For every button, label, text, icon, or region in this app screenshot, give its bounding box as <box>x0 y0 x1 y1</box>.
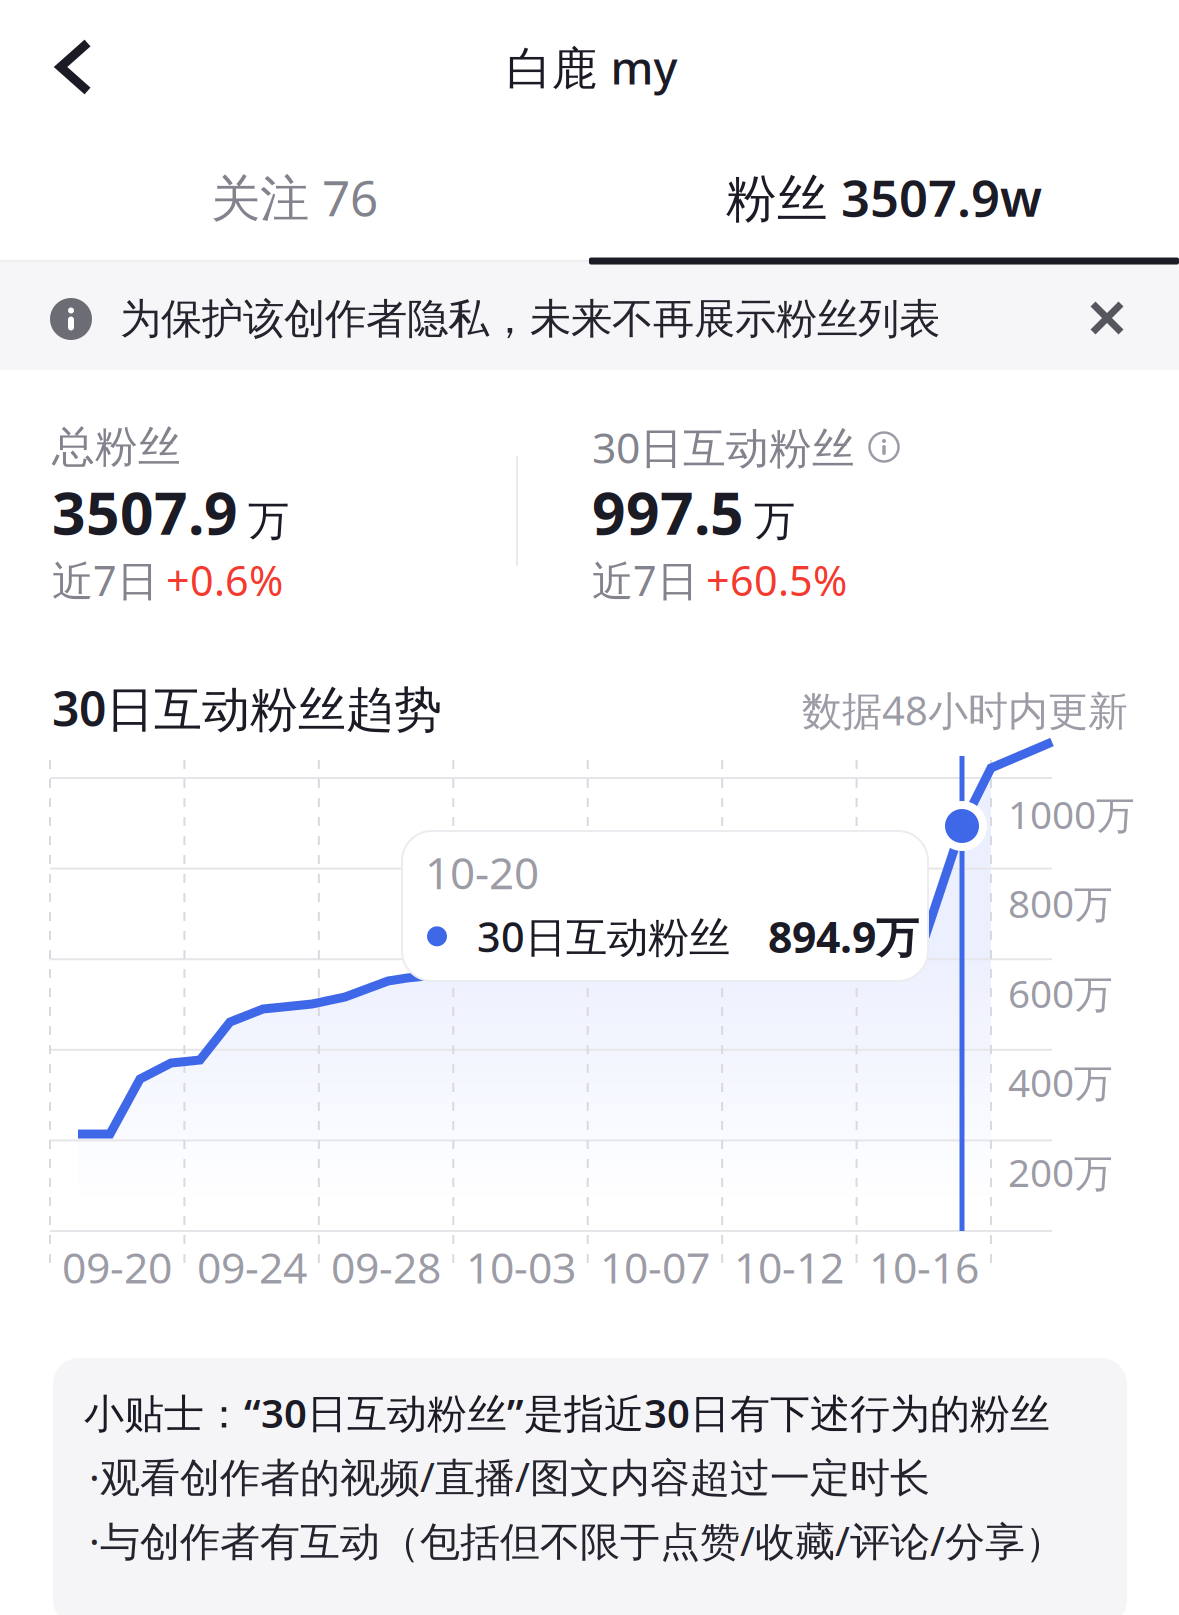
staticText: 09-24 <box>197 1239 307 1295</box>
staticText: 10-03 <box>466 1239 576 1295</box>
staticText: 894.9万 <box>768 908 919 965</box>
staticText: 3507.9 <box>52 473 238 551</box>
staticText: 10-20 <box>425 843 539 901</box>
staticText: 200万 <box>1008 1146 1113 1198</box>
staticText: ·观看创作者的视频/直播/图文内容超过一定时长 <box>89 1450 930 1503</box>
staticText: 1000万 <box>1008 788 1135 840</box>
staticText: 30日互动粉丝趋势 <box>52 676 442 740</box>
staticText: 总粉丝 <box>52 421 181 473</box>
button[interactable]: 关注 76 <box>0 132 589 262</box>
staticText: 关注 76 <box>211 164 378 230</box>
staticText: +60.5% <box>706 553 847 607</box>
staticText: 小贴士：“30日互动粉丝”是指近30日有下述行为的粉丝 <box>84 1386 1050 1439</box>
staticText: 万 <box>248 496 289 546</box>
staticText: 近7日 <box>52 553 158 607</box>
staticText: 30日互动粉丝 <box>477 909 730 964</box>
staticText: 为保护该创作者隐私，未来不再展示粉丝列表 <box>120 294 940 344</box>
staticText: 09-20 <box>62 1239 172 1295</box>
staticText: 粉丝 3507.9w <box>726 163 1042 231</box>
button[interactable]: Close <box>1062 273 1152 363</box>
staticText: ·与创作者有互动（包括但不限于点赞/收藏/评论/分享） <box>89 1514 1065 1567</box>
staticText: 400万 <box>1008 1056 1113 1108</box>
staticText: 10-16 <box>869 1239 979 1295</box>
staticText: 09-28 <box>331 1239 441 1295</box>
staticText: 10-12 <box>734 1239 844 1295</box>
button[interactable]: Back <box>15 8 133 126</box>
staticText: 800万 <box>1008 877 1113 929</box>
staticText: 近7日 <box>592 553 698 607</box>
staticText: 白鹿 my <box>506 37 677 97</box>
staticText: 997.5 <box>592 473 744 551</box>
staticText: 数据48小时内更新 <box>802 683 1128 736</box>
staticText: 万 <box>754 496 795 546</box>
button[interactable]: 粉丝 3507.9w <box>589 132 1179 262</box>
staticText: 10-07 <box>600 1239 710 1295</box>
staticText: 30日互动粉丝 <box>592 419 855 475</box>
staticText: 600万 <box>1008 967 1113 1019</box>
staticText: +0.6% <box>166 553 283 607</box>
